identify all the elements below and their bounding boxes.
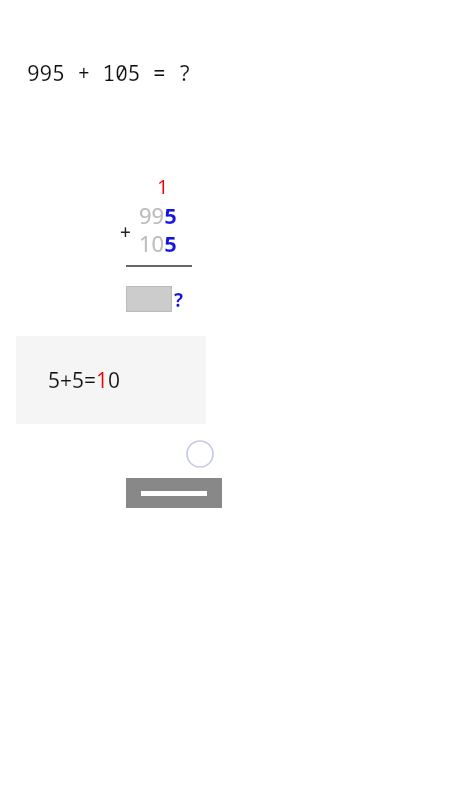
- staticText: 105: [139, 228, 177, 258]
- staticText: ?: [174, 287, 184, 313]
- staticText: 995: [139, 200, 177, 230]
- button[interactable]: [126, 286, 172, 312]
- staticText: 1: [157, 173, 169, 200]
- staticText: 995 + 105 = ?: [27, 59, 191, 88]
- staticText: +: [120, 219, 131, 245]
- button[interactable]: Progress indicator: [186, 440, 214, 468]
- button[interactable]: Backspace: [126, 478, 222, 508]
- button[interactable]: 5+5=10: [16, 336, 206, 424]
- staticText: 5+5=10: [48, 366, 121, 395]
